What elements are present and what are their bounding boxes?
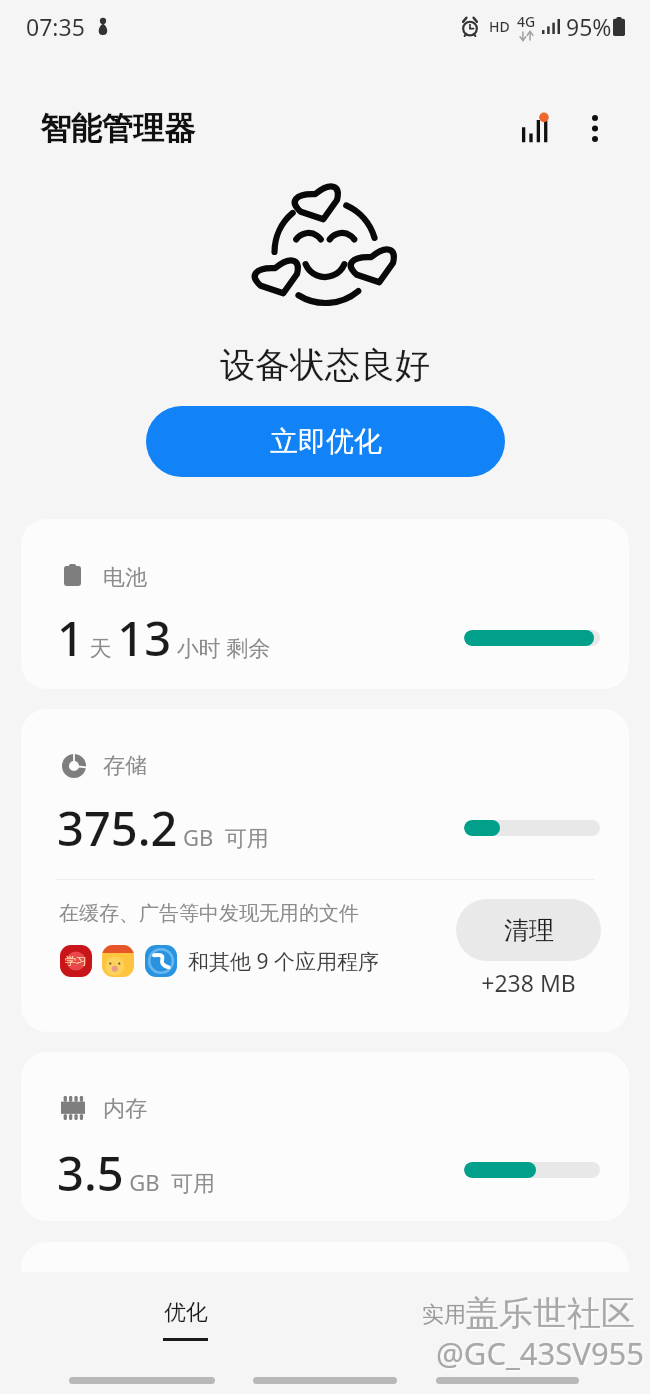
staticText: 设备状态良好 <box>220 343 430 387</box>
staticText: 07:35 <box>26 11 85 42</box>
staticText: +238 MB <box>456 967 601 998</box>
staticText: 盖乐世社区 <box>465 1292 635 1335</box>
staticText: 存储 <box>103 752 147 780</box>
button[interactable]: 电池 <box>21 519 629 689</box>
staticText: 立即优化 <box>270 424 382 459</box>
button[interactable]: 内存 <box>21 1052 629 1221</box>
button[interactable]: 实用 <box>364 1280 524 1354</box>
button[interactable]: 立即优化 <box>146 406 505 477</box>
staticText: @GC_43SV955 <box>436 1332 645 1374</box>
staticText: 95% <box>566 11 612 42</box>
staticText: 学习 <box>65 954 87 968</box>
staticText: 375.2 GB 可用 <box>57 796 269 860</box>
button[interactable]: Usage statistics <box>507 102 563 158</box>
button[interactable]: More options <box>567 100 623 156</box>
staticText: 1 天 13 小时 剩余 <box>57 606 271 670</box>
staticText: 电池 <box>103 564 147 592</box>
staticText: 在缓存、广告等中发现无用的文件 <box>59 901 359 926</box>
button[interactable]: 优化 <box>105 1280 265 1354</box>
staticText: 优化 <box>164 1299 208 1327</box>
staticText: 清理 <box>504 915 554 946</box>
button[interactable]: 清理 <box>456 899 601 961</box>
button[interactable]: 存储 <box>21 709 629 1032</box>
staticText: 盖乐世社区 <box>467 1294 637 1337</box>
staticText: 和其他 9 个应用程序 <box>188 947 379 976</box>
staticText: 内存 <box>103 1095 147 1123</box>
staticText: HD <box>489 17 510 36</box>
staticText: 3.5 GB 可用 <box>57 1141 216 1205</box>
staticText: @GC_43SV955 <box>438 1334 647 1376</box>
staticText: 智能管理器 <box>40 109 195 148</box>
staticText: 4G <box>517 12 536 31</box>
staticText: 实用 <box>422 1301 466 1329</box>
